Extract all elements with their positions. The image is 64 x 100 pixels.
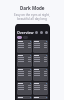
button[interactable] <box>17 96 32 99</box>
button[interactable] <box>33 40 48 53</box>
button[interactable] <box>17 40 32 53</box>
button[interactable] <box>17 82 32 95</box>
button[interactable] <box>17 68 32 81</box>
button[interactable] <box>33 54 48 67</box>
button[interactable] <box>23 36 28 39</box>
button[interactable] <box>17 36 22 39</box>
button[interactable] <box>33 82 48 95</box>
button[interactable]: Search <box>35 31 38 34</box>
button[interactable] <box>17 54 32 67</box>
button[interactable]: Notifications <box>40 31 43 34</box>
staticText: beautiful all day long <box>17 17 47 21</box>
button[interactable] <box>33 96 48 99</box>
button[interactable] <box>33 68 48 81</box>
staticText: Overview <box>17 30 34 35</box>
staticText: Dark Mode <box>20 5 45 11</box>
button[interactable]: More options <box>45 31 48 34</box>
staticText: Easy on the eyes at night, <box>14 13 50 17</box>
